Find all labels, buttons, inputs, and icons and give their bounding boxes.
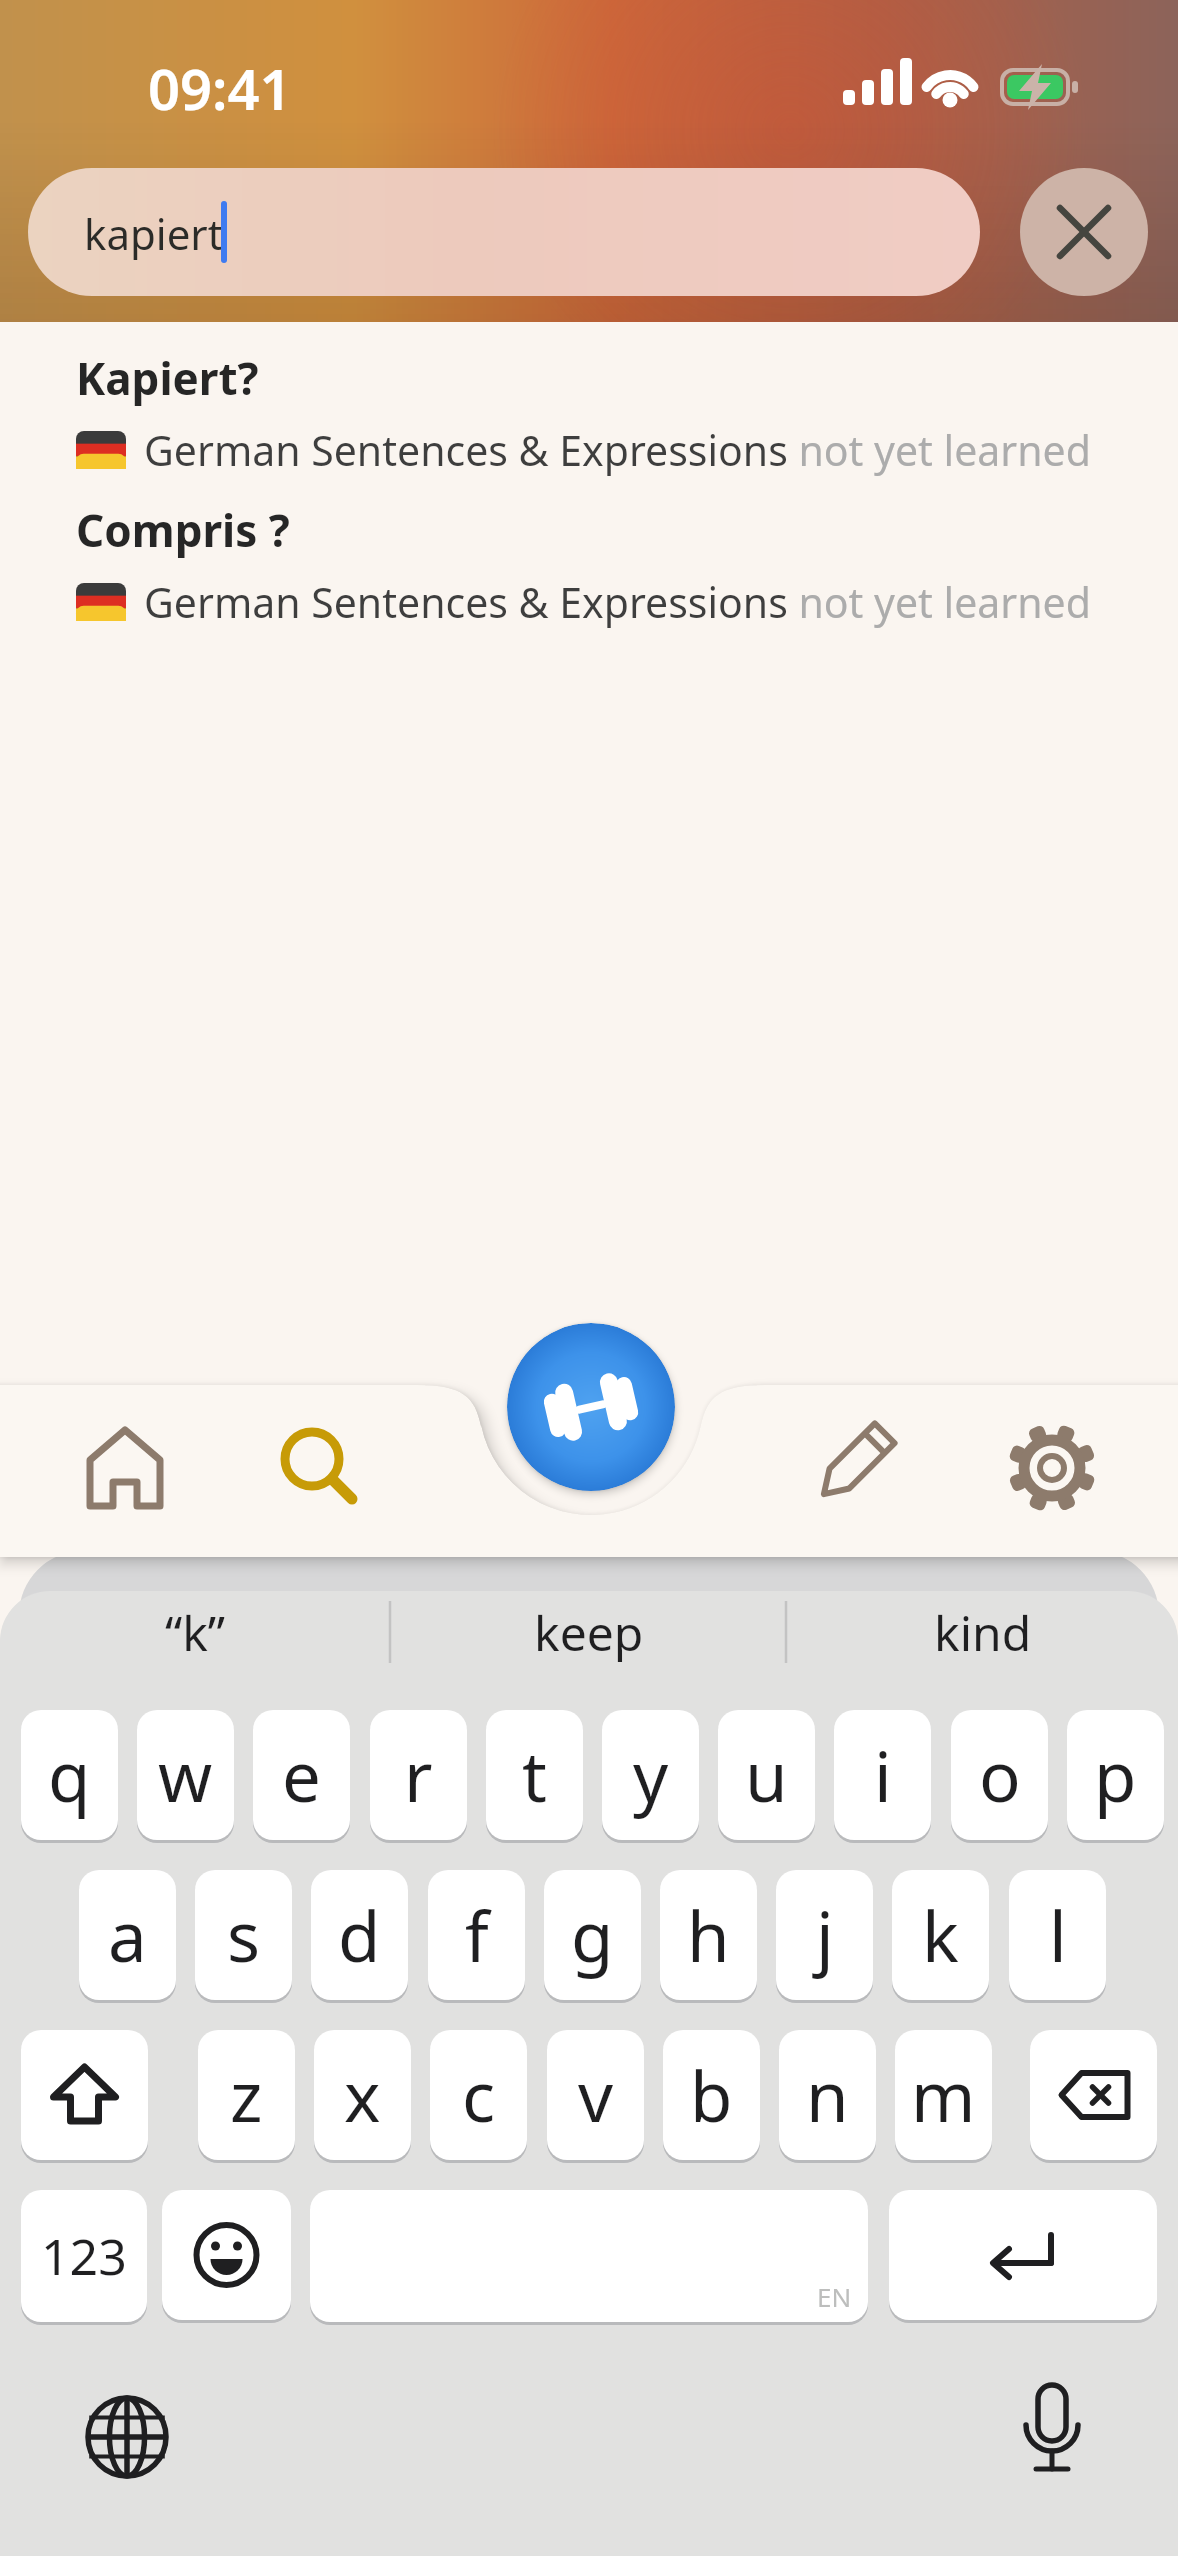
staticText: j (816, 1888, 834, 1982)
button[interactable]: y (602, 1710, 699, 1840)
staticText: k (922, 1888, 959, 1982)
button[interactable]: keep (454, 1599, 724, 1665)
button[interactable]: m (895, 2030, 992, 2160)
button[interactable]: n (779, 2030, 876, 2160)
staticText: l (1049, 1888, 1067, 1982)
button[interactable] (21, 2030, 148, 2160)
button[interactable]: a (79, 1870, 176, 2000)
staticText: t (522, 1728, 547, 1822)
staticText: kapiert (84, 205, 223, 262)
button[interactable]: w (137, 1710, 234, 1840)
button[interactable] (889, 2190, 1157, 2320)
staticText: x (344, 2048, 381, 2142)
button[interactable]: c (430, 2030, 527, 2160)
staticText: p (1094, 1728, 1137, 1822)
button[interactable]: u (718, 1710, 815, 1840)
button[interactable]: 123 (21, 2190, 147, 2322)
button[interactable]: Compris ? (0, 500, 1178, 630)
staticText: EN (817, 2279, 852, 2314)
staticText: w (158, 1728, 213, 1822)
button[interactable] (235, 1385, 470, 1557)
button[interactable]: EN (310, 2190, 868, 2322)
button[interactable]: “k” (60, 1599, 330, 1665)
staticText: v (578, 2048, 614, 2142)
staticText: German Sentences & Expressions not yet l… (144, 574, 1091, 630)
staticText: Kapiert? (76, 348, 259, 408)
staticText: g (571, 1888, 614, 1982)
button[interactable]: o (951, 1710, 1048, 1840)
staticText: 123 (41, 2222, 127, 2290)
button[interactable] (0, 1385, 235, 1557)
staticText: “k” (165, 1600, 226, 1665)
staticText: z (230, 2048, 263, 2142)
staticText: o (979, 1728, 1021, 1822)
button[interactable] (1020, 168, 1148, 296)
button[interactable]: v (547, 2030, 644, 2160)
button[interactable]: t (486, 1710, 583, 1840)
staticText: German Sentences & Expressions not yet l… (144, 422, 1091, 478)
staticText: r (404, 1728, 433, 1822)
button[interactable] (162, 2190, 291, 2320)
staticText: u (745, 1728, 788, 1822)
button[interactable]: kind (848, 1599, 1118, 1665)
staticText: a (108, 1888, 147, 1982)
button[interactable] (75, 2385, 179, 2489)
button[interactable]: kapiert (28, 168, 980, 296)
staticText: b (690, 2048, 733, 2142)
button[interactable]: f (428, 1870, 525, 2000)
staticText: m (911, 2048, 976, 2142)
button[interactable]: l (1009, 1870, 1106, 2000)
staticText: y (633, 1728, 669, 1822)
staticText: keep (534, 1600, 644, 1665)
button[interactable]: b (663, 2030, 760, 2160)
button[interactable]: q (21, 1710, 118, 1840)
button[interactable]: p (1067, 1710, 1164, 1840)
staticText: e (282, 1728, 321, 1822)
button[interactable] (1030, 2030, 1157, 2160)
button[interactable]: r (370, 1710, 467, 1840)
button[interactable]: g (544, 1870, 641, 2000)
staticText: c (462, 2048, 496, 2142)
button[interactable] (507, 1323, 675, 1491)
button[interactable]: h (660, 1870, 757, 2000)
button[interactable] (706, 1385, 942, 1557)
staticText: i (874, 1728, 892, 1822)
button[interactable]: z (198, 2030, 295, 2160)
staticText: kind (934, 1600, 1032, 1665)
staticText: d (338, 1888, 381, 1982)
button[interactable]: s (195, 1870, 292, 2000)
staticText: q (48, 1728, 91, 1822)
staticText: f (465, 1888, 489, 1982)
button[interactable]: k (892, 1870, 989, 2000)
button[interactable]: j (776, 1870, 873, 2000)
button[interactable]: Kapiert? (0, 348, 1178, 478)
button[interactable]: e (253, 1710, 350, 1840)
staticText: h (687, 1888, 730, 1982)
staticText: 09:41 (148, 50, 292, 126)
staticText: n (806, 2048, 849, 2142)
button[interactable] (942, 1385, 1178, 1557)
button[interactable]: x (314, 2030, 411, 2160)
button[interactable] (1000, 2379, 1104, 2483)
staticText: Compris ? (76, 500, 290, 560)
button[interactable]: i (834, 1710, 931, 1840)
staticText: s (227, 1888, 261, 1982)
button[interactable]: d (311, 1870, 408, 2000)
